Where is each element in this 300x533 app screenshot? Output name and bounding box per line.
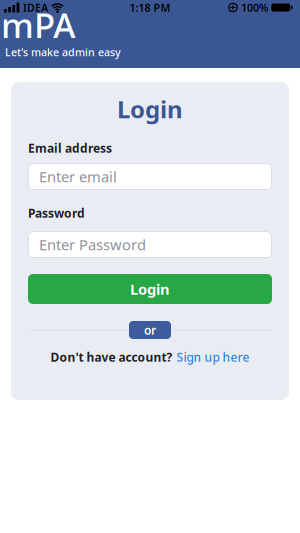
button[interactable]: Login <box>28 274 272 304</box>
staticText: Enter Password <box>39 235 146 254</box>
staticText: 100% <box>241 0 268 15</box>
button[interactable]: Sign up here <box>176 349 249 365</box>
staticText: Password <box>28 205 85 221</box>
button[interactable]: Enter Password <box>28 231 272 258</box>
staticText: or <box>144 322 156 338</box>
staticText: Enter email <box>39 167 117 186</box>
staticText: Sign up here <box>176 349 249 365</box>
staticText: mPA <box>1 2 76 48</box>
staticText: Login <box>117 93 183 125</box>
staticText: Email address <box>28 140 112 156</box>
staticText: Login <box>130 279 170 299</box>
staticText: Don't have account? <box>50 349 172 365</box>
staticText: 1:18 PM <box>129 0 170 15</box>
staticText: Let's make admin easy <box>5 45 121 59</box>
button[interactable]: Enter email <box>28 163 272 190</box>
staticText: IDEA <box>23 0 48 15</box>
